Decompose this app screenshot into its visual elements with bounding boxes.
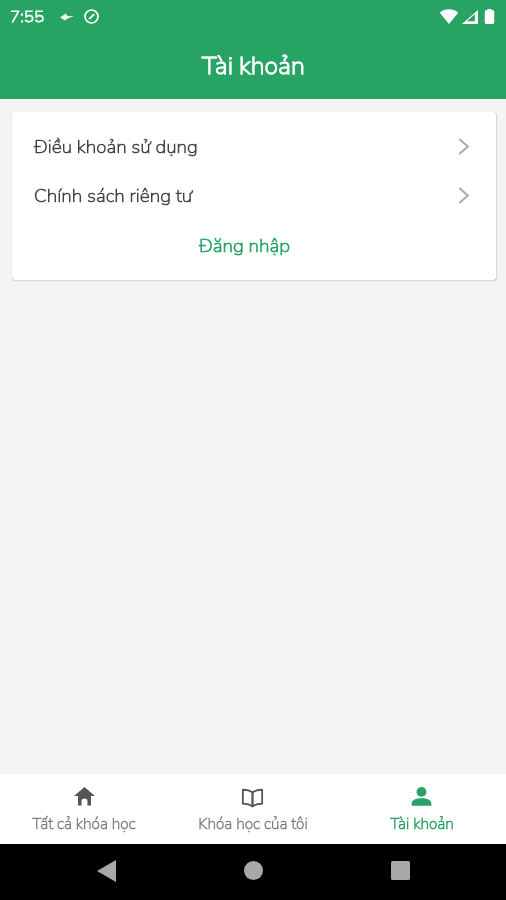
staticText: 7:55 [10,5,45,28]
button[interactable]: Tài khoản [337,773,506,844]
staticText: Đăng nhập [199,233,291,259]
button[interactable]: Đăng nhập [12,220,496,279]
staticText: Chính sách riêng tư [34,183,193,209]
button[interactable]: Chính sách riêng tư [12,171,496,220]
button[interactable]: Điều khoản sử dụng [12,122,496,171]
button[interactable]: Back [76,847,136,895]
button[interactable]: Home [223,846,283,894]
staticText: Tài khoản [202,49,305,83]
staticText: Tất cả khóa học [32,813,136,834]
staticText: Tài khoản [390,813,454,834]
staticText: Khóa học của tôi [198,813,308,834]
staticText: Điều khoản sử dụng [34,134,198,160]
button[interactable]: Tất cả khóa học [0,773,168,844]
button[interactable]: Khóa học của tôi [168,773,337,844]
button[interactable]: Recent apps [370,846,430,894]
